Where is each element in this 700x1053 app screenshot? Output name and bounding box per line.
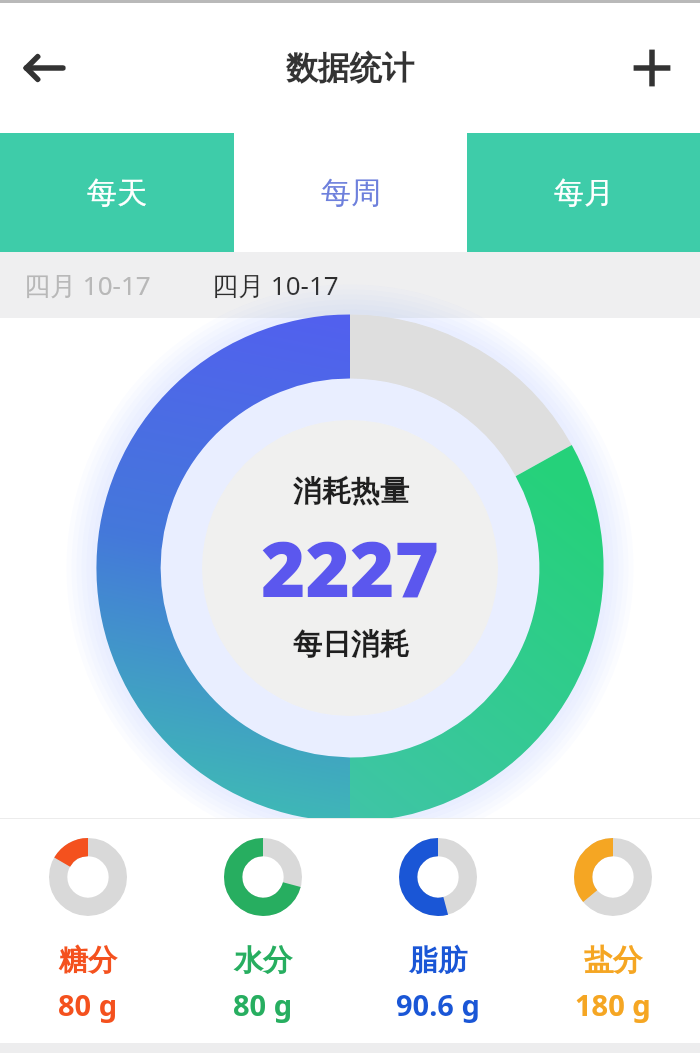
- staticText: 四月 10-17: [212, 267, 339, 303]
- button[interactable]: 水分: [175, 819, 350, 1043]
- staticText: 80 g: [58, 985, 118, 1024]
- button[interactable]: 脂肪: [350, 819, 525, 1043]
- button[interactable]: Back: [12, 36, 76, 100]
- staticText: 每天: [87, 174, 147, 212]
- staticText: 每日消耗: [293, 626, 409, 663]
- staticText: 四月 10-17: [24, 267, 151, 303]
- staticText: 消耗热量: [293, 473, 409, 510]
- staticText: 80 g: [233, 985, 293, 1024]
- staticText: 水分: [234, 942, 292, 979]
- staticText: 脂肪: [409, 942, 467, 979]
- button[interactable]: 每周: [234, 133, 467, 252]
- staticText: 90.6 g: [396, 985, 480, 1024]
- staticText: 糖分: [59, 942, 117, 979]
- staticText: 180 g: [575, 985, 651, 1024]
- staticText: 2227: [261, 516, 440, 620]
- staticText: 每周: [321, 174, 381, 212]
- staticText: 盐分: [584, 942, 642, 979]
- button[interactable]: Add: [620, 36, 684, 100]
- button[interactable]: 盐分: [525, 819, 700, 1043]
- staticText: 数据统计: [286, 48, 414, 88]
- button[interactable]: 糖分: [0, 819, 175, 1043]
- button[interactable]: 四月 10-17: [0, 252, 700, 318]
- button[interactable]: 每天: [0, 133, 234, 252]
- staticText: 每月: [554, 174, 614, 212]
- button[interactable]: 每月: [467, 133, 700, 252]
